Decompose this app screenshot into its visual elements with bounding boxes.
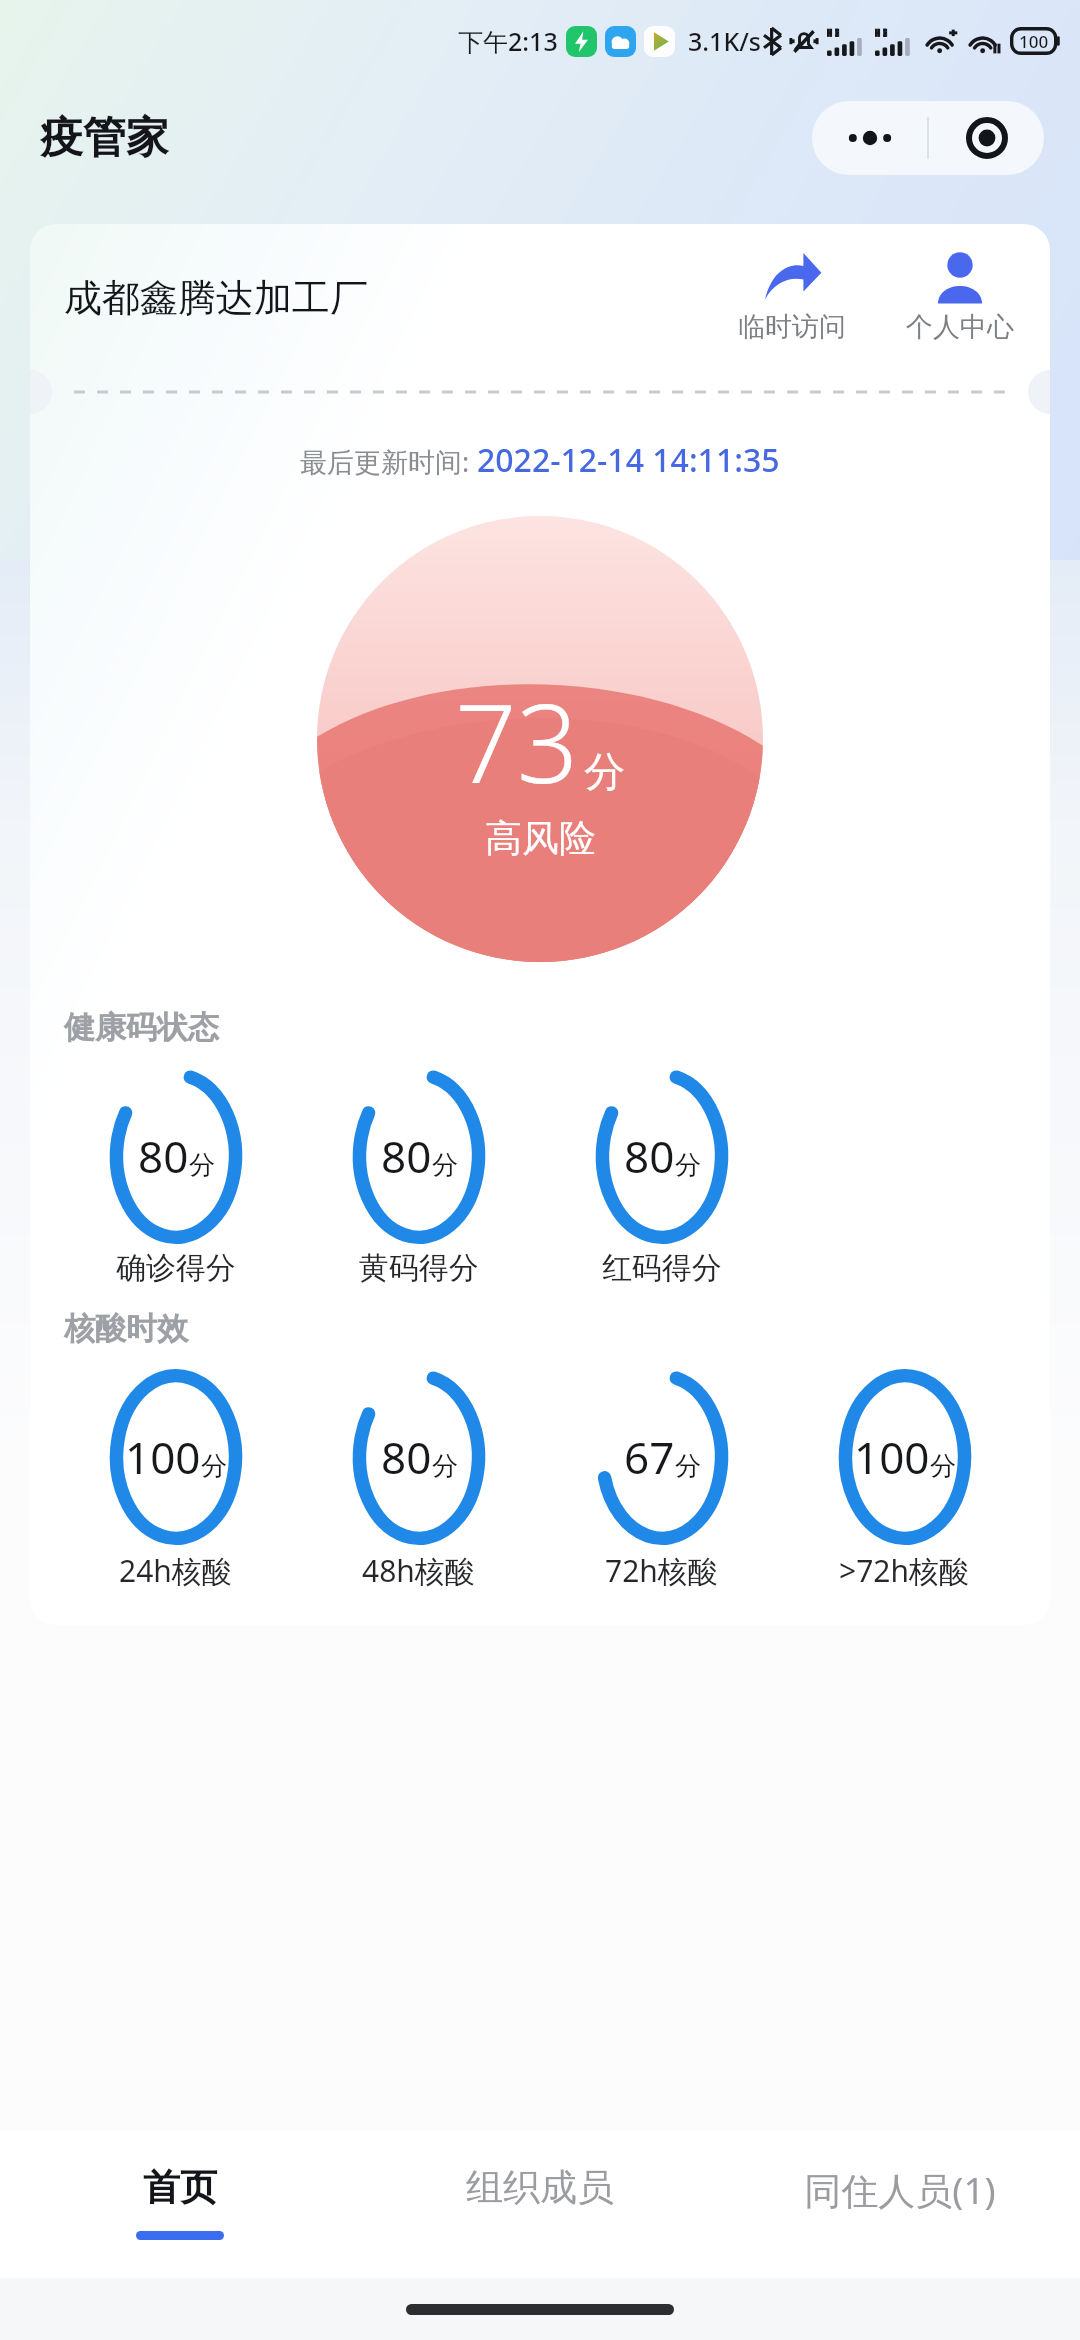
staticText: 下午2:13 [458,24,558,58]
staticText: 健康码状态 [64,1008,219,1047]
button[interactable]: More and close capsule [812,101,1044,175]
staticText: 48h核酸 [362,1550,475,1591]
staticText: 分 [675,1450,701,1483]
staticText: 分 [201,1450,227,1483]
staticText: 3.1K/s [688,24,761,58]
button[interactable]: 组织成员 [360,2130,720,2278]
button[interactable]: 100 [54,1368,297,1591]
staticText: 分 [930,1450,956,1483]
staticText: 100 [125,1427,201,1487]
staticText: 同住人员(1) [804,2164,996,2215]
button[interactable]: 67 [540,1368,783,1591]
button[interactable]: 临时访问 [732,248,852,348]
staticText: 73 [455,668,579,815]
staticText: 80 [381,1126,432,1186]
staticText: 疫管家 [40,111,169,165]
staticText: 67 [624,1427,675,1487]
staticText: 高风险 [485,815,596,862]
staticText: 100 [854,1427,930,1487]
staticText: 首页 [143,2164,217,2211]
staticText: 临时访问 [738,310,846,344]
button[interactable]: 80 [540,1067,783,1287]
staticText: 24h核酸 [119,1550,232,1591]
staticText: 80 [624,1126,675,1186]
staticText: 分 [584,747,625,799]
staticText: 分 [432,1149,458,1182]
staticText: 核酸时效 [64,1309,188,1348]
staticText: 最后更新时间: [300,443,477,480]
button[interactable]: 80 [297,1368,540,1591]
staticText: 分 [432,1450,458,1483]
staticText: 成都鑫腾达加工厂 [64,274,368,322]
staticText: 确诊得分 [116,1249,236,1287]
staticText: 分 [189,1149,215,1182]
staticText: 100 [1019,30,1049,53]
button[interactable]: 同住人员(1) [720,2130,1080,2278]
staticText: 2022-12-14 14:11:35 [477,438,780,482]
button[interactable]: 个人中心 [900,248,1020,348]
staticText: 个人中心 [906,310,1014,344]
staticText: 80 [138,1126,189,1186]
staticText: >72h核酸 [839,1550,970,1591]
button[interactable]: 80 [54,1067,297,1287]
staticText: 80 [381,1427,432,1487]
staticText: 分 [675,1149,701,1182]
button[interactable]: 首页 [0,2130,360,2278]
button[interactable]: 80 [297,1067,540,1287]
staticText: 72h核酸 [605,1550,718,1591]
staticText: 红码得分 [602,1249,722,1287]
button[interactable]: 100 [783,1368,1026,1591]
staticText: 组织成员 [466,2164,614,2211]
staticText: 黄码得分 [359,1249,479,1287]
